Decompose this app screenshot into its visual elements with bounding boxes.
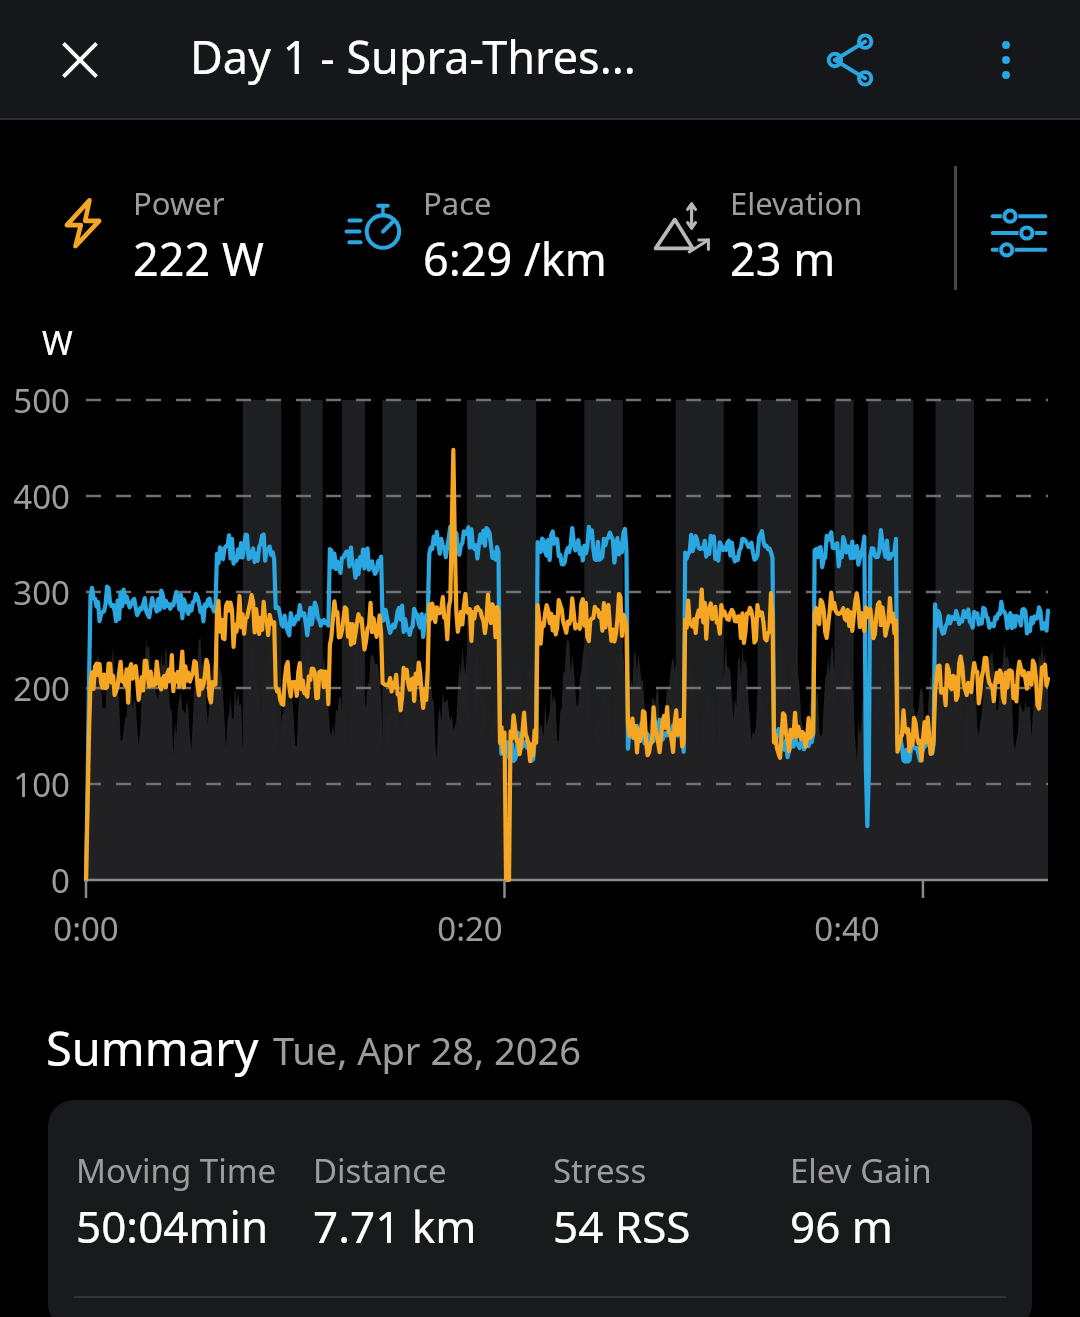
staticText: 23 m [730, 228, 836, 289]
staticText: Distance [313, 1148, 447, 1193]
button[interactable]: Share [806, 16, 894, 104]
staticText: 96 m [790, 1196, 893, 1256]
staticText: 400 [13, 474, 70, 519]
staticText: 500 [13, 378, 70, 423]
staticText: 0:40 [814, 906, 880, 951]
staticText: Power [133, 182, 225, 224]
staticText: 0:00 [53, 906, 119, 951]
staticText: 300 [13, 570, 70, 615]
staticText: Summary [46, 1016, 259, 1080]
staticText: Tue, Apr 28, 2026 [273, 1024, 581, 1076]
staticText: 6:29 /km [423, 228, 607, 289]
staticText: 222 W [133, 228, 264, 289]
staticText: 50:04min [76, 1196, 269, 1256]
button[interactable]: Close [36, 16, 124, 104]
staticText: Day 1 - Supra-Thres... [190, 26, 636, 87]
staticText: Moving Time [76, 1148, 277, 1193]
staticText: 100 [13, 762, 70, 807]
staticText: W [42, 320, 73, 365]
button[interactable]: Moving Time [48, 1100, 1032, 1317]
staticText: Elev Gain [790, 1148, 932, 1193]
staticText: 7.71 km [313, 1196, 477, 1256]
staticText: 54 RSS [553, 1196, 691, 1256]
staticText: Pace [423, 182, 492, 224]
staticText: Elevation [730, 182, 863, 224]
button[interactable]: More options [962, 16, 1050, 104]
staticText: 0:20 [437, 906, 503, 951]
staticText: 200 [13, 666, 70, 711]
staticText: 0 [51, 858, 70, 903]
button[interactable]: Chart settings [974, 188, 1064, 278]
staticText: Stress [553, 1148, 647, 1193]
